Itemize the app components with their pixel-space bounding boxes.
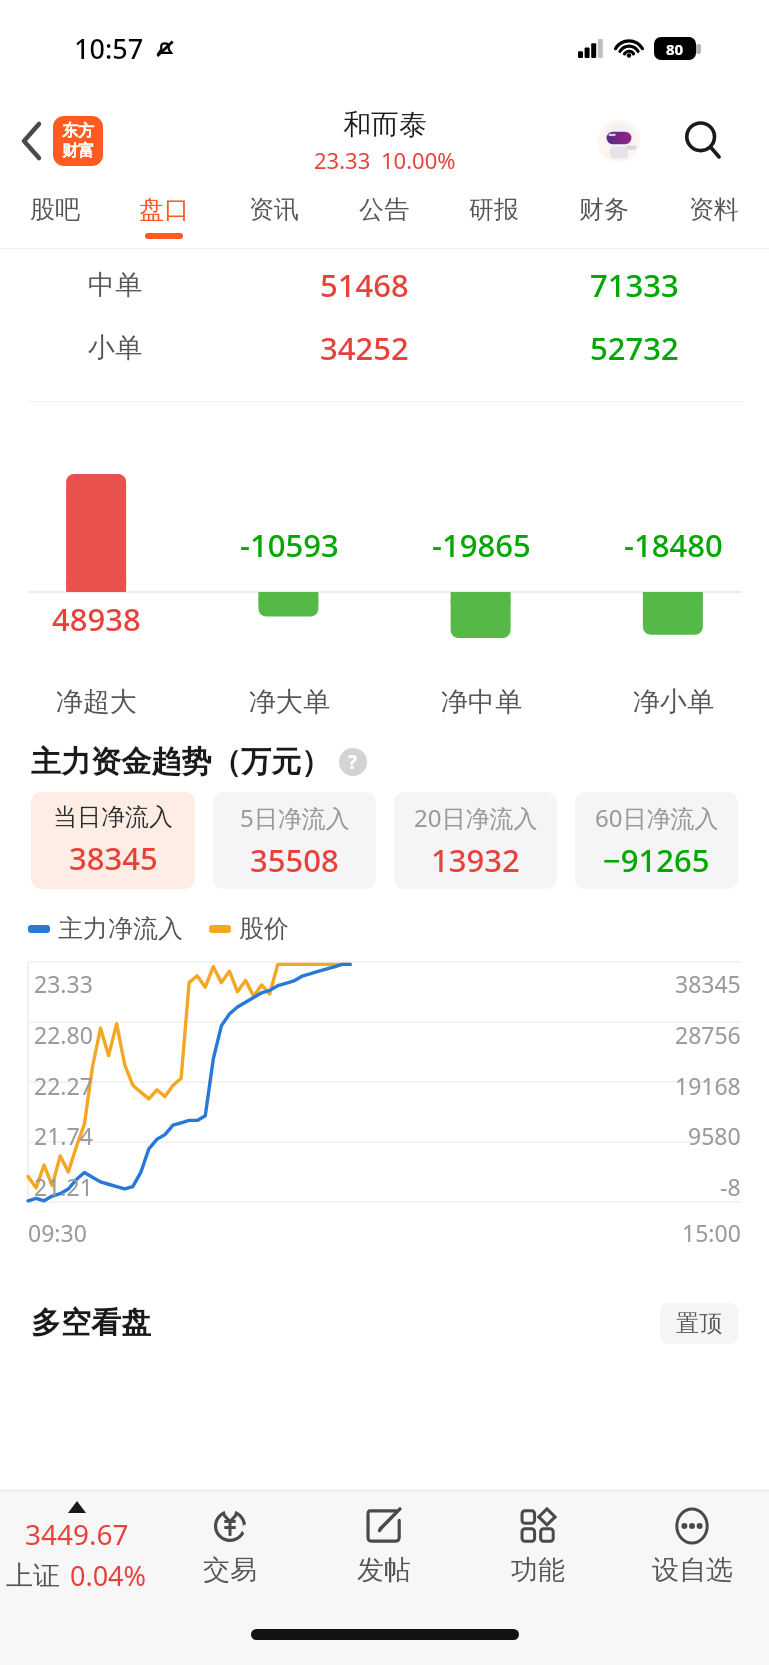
staticText: 21.74: [34, 1120, 93, 1151]
staticText: 20日净流入: [414, 801, 538, 834]
staticText: -8: [720, 1171, 741, 1202]
staticText: 财务: [579, 194, 629, 225]
staticText: -10593: [240, 524, 339, 566]
staticText: -18480: [624, 524, 723, 566]
staticText: -19865: [432, 524, 531, 566]
staticText: 置顶: [676, 1309, 722, 1338]
button[interactable]: 设自选: [615, 1491, 769, 1603]
staticText: 23.33: [34, 968, 93, 999]
staticText: 34252: [320, 327, 409, 369]
staticText: 多空看盘: [31, 1304, 151, 1342]
staticText: 13932: [431, 839, 520, 881]
button[interactable]: 盘口: [109, 186, 219, 248]
staticText: 设自选: [652, 1553, 733, 1587]
staticText: 38345: [69, 837, 158, 879]
button[interactable]: 功能: [461, 1491, 615, 1603]
staticText: 主力资金趋势（万元）: [31, 743, 331, 781]
staticText: 主力净流入: [58, 913, 183, 944]
button[interactable]: 财务: [549, 186, 659, 248]
button[interactable]: East Money: [53, 116, 103, 166]
staticText: 财富: [62, 141, 94, 161]
staticText: −91265: [603, 839, 710, 881]
button[interactable]: 3449.67: [0, 1491, 153, 1603]
staticText: 60日净流入: [595, 801, 719, 834]
button[interactable]: Search: [677, 114, 731, 168]
staticText: 上证: [6, 1559, 60, 1593]
staticText: 52732: [590, 327, 679, 369]
button[interactable]: 资讯: [219, 186, 329, 248]
staticText: 股吧: [30, 194, 80, 225]
button[interactable]: 研报: [439, 186, 549, 248]
button[interactable]: Help: [339, 748, 367, 776]
staticText: 净超大: [56, 685, 137, 719]
button[interactable]: 60日净流入: [575, 792, 738, 889]
staticText: 股价: [239, 913, 289, 944]
staticText: 净小单: [633, 685, 714, 719]
staticText: 35508: [250, 839, 339, 881]
button[interactable]: 当日净流入: [31, 792, 195, 889]
staticText: ?: [348, 749, 358, 775]
staticText: 38345: [675, 968, 741, 999]
staticText: 资料: [689, 194, 739, 225]
staticText: 22.80: [34, 1019, 93, 1050]
staticText: 19168: [675, 1070, 741, 1101]
staticText: 3449.67: [25, 1515, 129, 1553]
staticText: 5日净流入: [240, 801, 350, 834]
staticText: 21.21: [34, 1171, 93, 1202]
button[interactable]: 和而泰: [314, 107, 456, 175]
button[interactable]: 5日净流入: [213, 792, 376, 889]
staticText: 中单: [88, 268, 142, 302]
staticText: 当日净流入: [53, 802, 173, 832]
staticText: 28756: [675, 1019, 741, 1050]
staticText: 15:00: [682, 1217, 741, 1248]
button[interactable]: Back: [14, 118, 50, 164]
staticText: 80: [666, 39, 684, 59]
button[interactable]: 置顶: [660, 1303, 738, 1344]
staticText: 盘口: [139, 194, 189, 225]
button[interactable]: 发帖: [307, 1491, 461, 1603]
button[interactable]: 股吧: [0, 186, 109, 248]
staticText: 22.27: [34, 1070, 93, 1101]
staticText: 71333: [590, 264, 679, 306]
staticText: 发帖: [357, 1553, 411, 1587]
staticText: 23.33: [314, 145, 371, 175]
staticText: 东方: [62, 121, 94, 141]
staticText: 资讯: [249, 194, 299, 225]
staticText: 公告: [359, 194, 409, 225]
button[interactable]: 交易: [153, 1491, 307, 1603]
staticText: 0.04%: [70, 1557, 147, 1594]
staticText: 净中单: [441, 685, 522, 719]
staticText: 10.00%: [381, 145, 456, 175]
button[interactable]: Assistant: [593, 115, 645, 167]
staticText: 研报: [469, 194, 519, 225]
staticText: 净大单: [249, 685, 330, 719]
staticText: 9580: [688, 1120, 741, 1151]
staticText: 功能: [511, 1553, 565, 1587]
staticText: 51468: [320, 264, 409, 306]
button[interactable]: 20日净流入: [394, 792, 557, 889]
staticText: 09:30: [28, 1217, 87, 1248]
staticText: 交易: [203, 1553, 257, 1587]
button[interactable]: 资料: [659, 186, 769, 248]
button[interactable]: 公告: [329, 186, 439, 248]
staticText: 小单: [88, 331, 142, 365]
staticText: 10:57: [74, 30, 144, 67]
staticText: 48938: [52, 598, 141, 640]
staticText: 和而泰: [343, 107, 427, 142]
